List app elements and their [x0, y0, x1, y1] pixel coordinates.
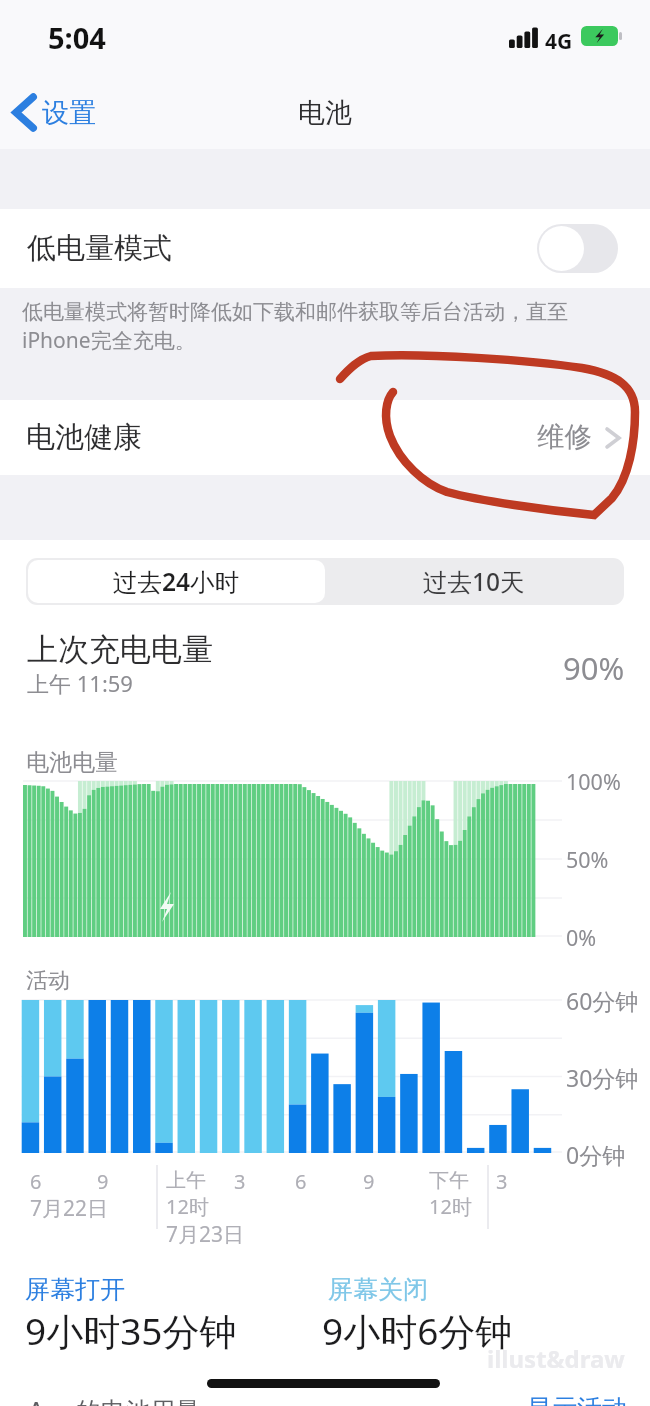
staticText: 9小时6分钟 [322, 1305, 513, 1356]
staticText: 0% [566, 923, 597, 952]
button[interactable]: 低电量模式 [0, 209, 650, 288]
staticText: 上午 11:59 [27, 668, 133, 698]
staticText: 3 [234, 1168, 246, 1195]
staticText: 7月22日 [30, 1194, 109, 1223]
staticText: App的电池用量 [28, 1393, 201, 1406]
button[interactable]: 电池健康 [0, 400, 650, 475]
button[interactable]: 显示活动 [527, 1393, 627, 1406]
staticText: 0分钟 [566, 1139, 626, 1170]
staticText: 6 [30, 1168, 42, 1195]
staticText: 电池电量 [26, 748, 118, 777]
staticText: 4G [545, 27, 573, 56]
button[interactable]: 过去10天 [325, 560, 622, 603]
staticText: 过去10天 [423, 565, 525, 598]
staticText: 低电量模式 [27, 230, 172, 267]
button[interactable]: 过去24小时 [28, 560, 325, 603]
staticText: 维修 [537, 420, 592, 455]
staticText: 5:04 [48, 18, 106, 57]
staticText: illust&draw [487, 1342, 625, 1375]
staticText: 100% [566, 767, 621, 796]
staticText: 60分钟 [566, 985, 639, 1016]
button[interactable]: 低电量模式开关 [537, 224, 618, 273]
button[interactable]: 返回 [0, 87, 108, 138]
staticText: 上午 12时 [166, 1168, 209, 1220]
staticText: 屏幕关闭 [328, 1274, 428, 1305]
staticText: 90% [563, 647, 625, 689]
staticText: 50% [566, 845, 609, 874]
staticText: 7月23日 [166, 1220, 245, 1249]
staticText: 下午 12时 [429, 1168, 472, 1220]
staticText: 9 [97, 1168, 109, 1195]
staticText: 设置 [42, 96, 96, 130]
staticText: 屏幕打开 [25, 1274, 125, 1305]
staticText: 3 [496, 1168, 508, 1195]
staticText: 6 [295, 1168, 307, 1195]
staticText: 活动 [26, 967, 70, 995]
other: 返回 [13, 95, 36, 130]
staticText: 9小时35分钟 [25, 1305, 237, 1356]
staticText: 低电量模式将暂时降低如下载和邮件获取等后台活动，直至 iPhone完全充电。 [22, 299, 568, 354]
staticText: 30分钟 [566, 1062, 639, 1093]
staticText: 电池 [298, 96, 352, 130]
staticText: 显示活动 [527, 1393, 627, 1406]
staticText: 上次充电电量 [27, 630, 213, 669]
staticText: 9 [363, 1168, 375, 1195]
staticText: 电池健康 [26, 419, 142, 456]
staticText: 过去24小时 [113, 565, 240, 598]
